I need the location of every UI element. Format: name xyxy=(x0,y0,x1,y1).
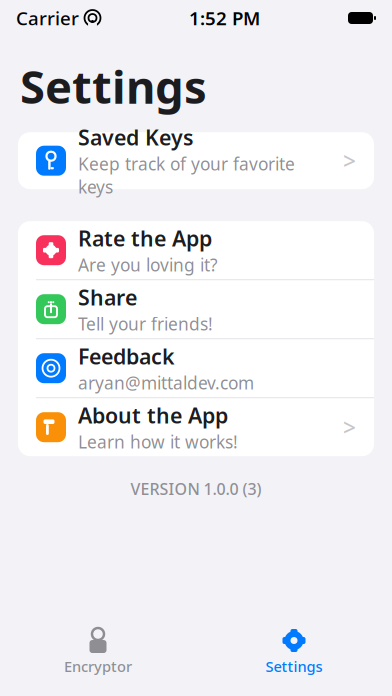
button[interactable]: Settings xyxy=(234,622,354,682)
staticText: Settings xyxy=(265,656,322,676)
button[interactable]: Share xyxy=(18,280,374,338)
staticText: Carrier xyxy=(16,6,79,30)
staticText: > xyxy=(343,146,356,176)
staticText: Encryptor xyxy=(64,656,132,676)
staticText: aryan@mittaldev.com xyxy=(78,371,254,394)
staticText: Rate the App xyxy=(78,224,212,252)
button[interactable]: Rate the App xyxy=(18,221,374,279)
button[interactable]: Encryptor xyxy=(38,622,158,682)
staticText: Settings xyxy=(20,56,207,116)
staticText: 1:52 PM xyxy=(189,6,260,30)
button[interactable]: Saved Keys xyxy=(18,132,374,189)
staticText: Are you loving it? xyxy=(78,253,218,276)
staticText: Learn how it works! xyxy=(78,430,238,453)
button[interactable]: Feedback xyxy=(18,339,374,397)
staticText: Saved Keys xyxy=(78,123,194,151)
staticText: Tell your friends! xyxy=(78,312,213,335)
staticText: About the App xyxy=(78,401,228,429)
staticText: Share xyxy=(78,283,137,311)
button[interactable]: About the App xyxy=(18,398,374,456)
staticText: Keep track of your favorite keys xyxy=(78,152,295,198)
staticText: > xyxy=(343,412,356,442)
staticText: VERSION 1.0.0 (3) xyxy=(130,478,261,499)
staticText: Feedback xyxy=(78,342,175,370)
